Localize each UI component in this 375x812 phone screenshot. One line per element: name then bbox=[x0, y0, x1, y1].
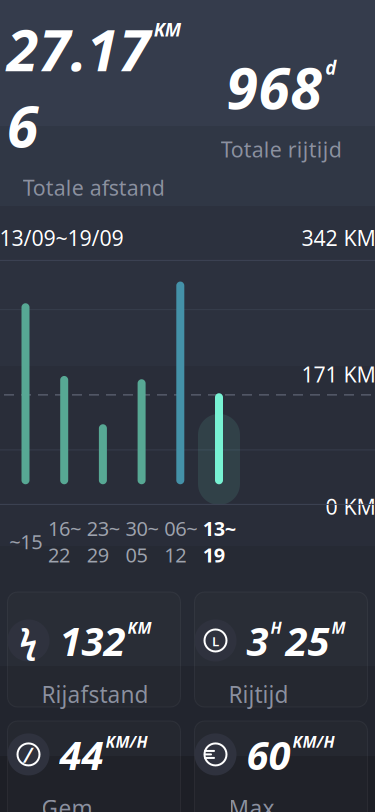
staticText: ⁄ bbox=[27, 740, 30, 769]
staticText: Max. snelheid bbox=[228, 793, 319, 812]
staticText: 30~05 bbox=[125, 515, 158, 568]
staticText: 0 KM bbox=[325, 492, 375, 521]
staticText: Gem. Snelheid bbox=[41, 793, 133, 812]
staticText: M bbox=[331, 617, 345, 638]
staticText: 13/09~19/09 bbox=[0, 224, 123, 252]
button[interactable]: L bbox=[194, 592, 367, 707]
staticText: KM/H bbox=[292, 731, 334, 752]
button[interactable]: ϟ bbox=[7, 592, 180, 707]
staticText: 342 KM bbox=[301, 224, 375, 252]
staticText: 132 bbox=[59, 614, 125, 667]
staticText: Totale afstand bbox=[23, 173, 165, 201]
staticText: KM/H bbox=[105, 731, 147, 752]
staticText: H bbox=[270, 617, 281, 638]
staticText: 968 bbox=[226, 49, 322, 125]
staticText: Rijafstand bbox=[41, 679, 148, 709]
staticText: KM bbox=[154, 17, 181, 42]
staticText: d bbox=[325, 55, 336, 80]
staticText: ϟ bbox=[19, 619, 37, 662]
staticText: 3 bbox=[246, 614, 268, 667]
staticText: L bbox=[212, 632, 219, 650]
staticText: Totale rijtijd bbox=[221, 135, 342, 163]
button[interactable]: ⁄ bbox=[7, 721, 180, 812]
staticText: 13~19 bbox=[203, 515, 236, 568]
button[interactable]: 60 bbox=[194, 721, 367, 812]
staticText: Rijtijd bbox=[228, 679, 288, 709]
staticText: 27.176 bbox=[7, 11, 151, 163]
staticText: ~15 bbox=[9, 528, 42, 555]
staticText: 171 KM bbox=[301, 360, 375, 388]
staticText: 06~12 bbox=[164, 515, 197, 568]
staticText: 25 bbox=[285, 614, 329, 667]
staticText: 44 bbox=[59, 728, 103, 781]
staticText: 60 bbox=[246, 728, 290, 781]
staticText: 23~29 bbox=[87, 515, 120, 568]
staticText: KM bbox=[127, 617, 151, 638]
staticText: 16~22 bbox=[48, 515, 81, 568]
